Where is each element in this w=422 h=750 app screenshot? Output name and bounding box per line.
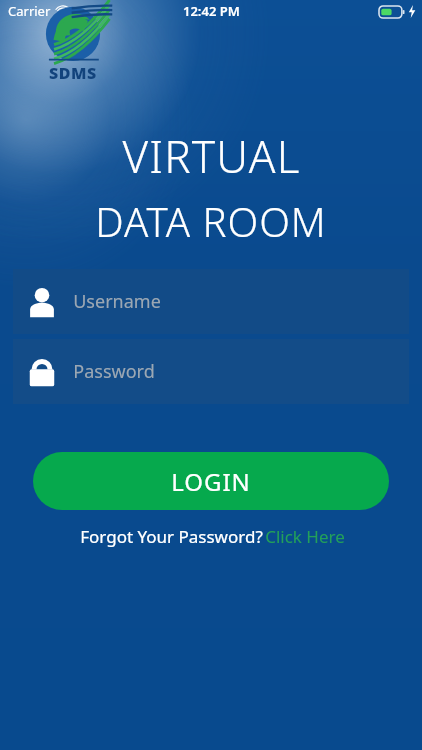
- staticText: Carrier: [8, 2, 51, 20]
- staticText: Click Here: [265, 525, 345, 548]
- staticText: SDMS: [49, 62, 97, 84]
- button[interactable]: LOGIN: [33, 452, 389, 510]
- button[interactable]: Forgot Your Password?: [72, 522, 351, 551]
- staticText: Password: [73, 359, 155, 384]
- other: Username: [25, 285, 59, 319]
- staticText: Forgot Your Password?: [78, 525, 265, 548]
- staticText: 12:42 PM: [183, 2, 240, 20]
- other: Password: [25, 355, 59, 389]
- button[interactable]: Username: [13, 269, 409, 334]
- staticText: Username: [73, 289, 161, 314]
- staticText: DATA ROOM: [95, 194, 327, 248]
- staticText: VIRTUAL: [122, 126, 301, 186]
- staticText: LOGIN: [171, 465, 251, 498]
- button[interactable]: Password: [13, 339, 409, 404]
